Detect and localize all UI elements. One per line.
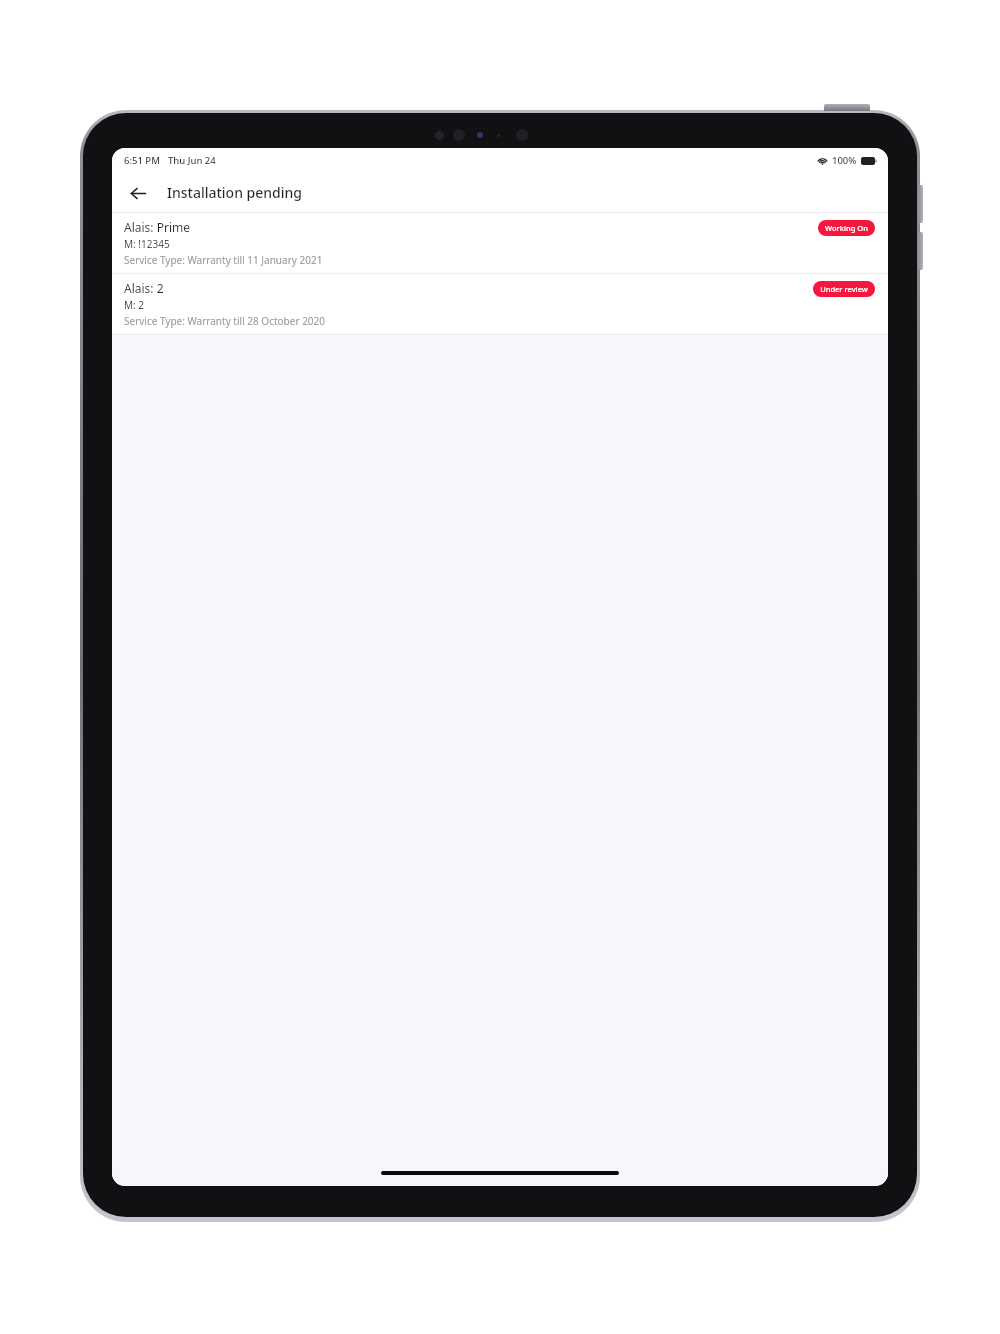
staticText: Under review — [820, 284, 868, 294]
button[interactable]: Alais: 2 — [112, 274, 888, 334]
button[interactable]: Alais: Prime — [112, 213, 888, 273]
staticText: Working On — [825, 223, 868, 233]
staticText: Alais: Prime — [124, 219, 190, 235]
staticText: M: !12345 — [124, 237, 170, 251]
staticText: 6:51 PM — [124, 154, 160, 167]
staticText: Thu Jun 24 — [168, 154, 216, 167]
button[interactable]: Working On — [818, 220, 875, 236]
staticText: Service Type: Warranty till 28 October 2… — [124, 314, 326, 328]
button[interactable]: Under review — [813, 281, 875, 297]
button[interactable]: Back — [121, 176, 155, 210]
staticText: M: 2 — [124, 298, 145, 312]
staticText: Service Type: Warranty till 11 January 2… — [124, 253, 323, 267]
staticText: Alais: 2 — [124, 280, 164, 296]
staticText: 100% — [832, 154, 857, 167]
staticText: Installation pending — [167, 183, 303, 202]
